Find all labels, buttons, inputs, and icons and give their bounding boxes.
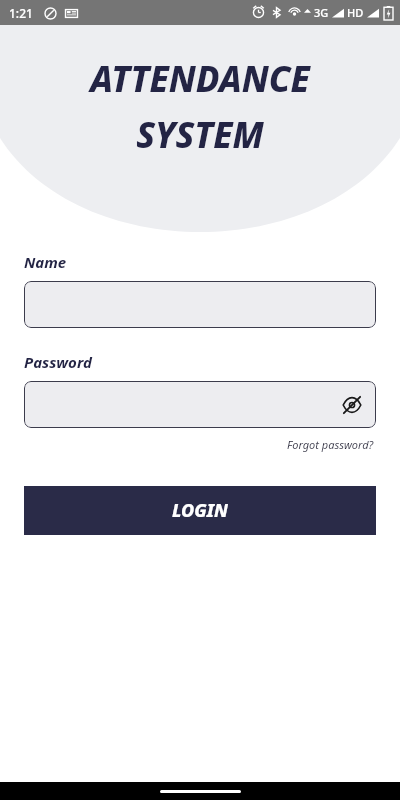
button[interactable]: Forgot password?: [285, 435, 376, 454]
staticText: 1:21: [9, 5, 33, 21]
button[interactable]: LOGIN: [24, 486, 376, 535]
button[interactable]: [24, 281, 376, 328]
button[interactable]: Show password: [339, 392, 365, 418]
staticText: Password: [24, 352, 92, 372]
staticText: 3G: [314, 5, 329, 20]
button[interactable]: Home: [160, 790, 241, 793]
button[interactable]: Show password: [24, 381, 376, 428]
staticText: Name: [24, 252, 67, 272]
staticText: ATTENDANCE: [90, 55, 310, 103]
staticText: LOGIN: [172, 498, 228, 523]
staticText: SYSTEM: [136, 111, 264, 159]
staticText: HD: [347, 5, 364, 20]
